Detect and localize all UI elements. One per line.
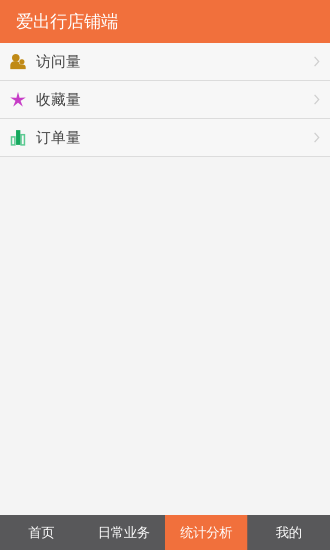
staticText: 日常业务 — [98, 524, 150, 541]
button[interactable]: 我的 — [247, 515, 330, 550]
button[interactable]: 首页 — [0, 515, 82, 550]
staticText: 收藏量 — [36, 90, 81, 108]
staticText: 订单量 — [36, 128, 81, 146]
staticText: 爱出行店铺端 — [16, 11, 118, 32]
staticText: 首页 — [28, 524, 54, 541]
button[interactable]: 收藏量 — [0, 81, 330, 119]
button[interactable]: 日常业务 — [82, 515, 165, 550]
button[interactable]: 订单量 — [0, 119, 330, 157]
staticText: 访问量 — [36, 52, 81, 70]
button[interactable]: 访问量 — [0, 43, 330, 81]
staticText: 我的 — [276, 524, 302, 541]
staticText: 统计分析 — [180, 524, 232, 541]
button[interactable]: 统计分析 — [165, 515, 247, 550]
